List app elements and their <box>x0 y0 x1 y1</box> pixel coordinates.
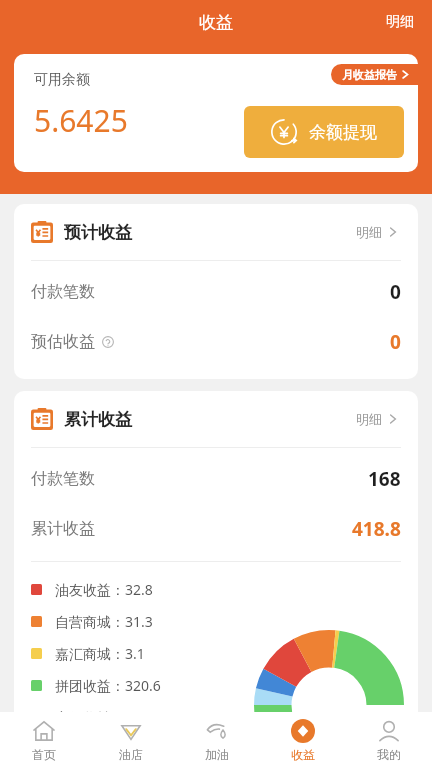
button[interactable]: 收益 <box>260 712 346 768</box>
staticText: 首页 <box>32 747 56 762</box>
button[interactable]: 月收益报告 <box>331 64 418 85</box>
button[interactable]: 我的 <box>346 712 432 768</box>
staticText: 累计收益 <box>64 409 132 430</box>
staticText: 预计收益 <box>64 222 132 243</box>
staticText: 明细 <box>356 411 382 427</box>
button[interactable]: 油店 <box>87 712 174 768</box>
staticText: 付款笔数 <box>31 282 95 302</box>
button[interactable]: 明细 <box>352 220 401 244</box>
staticText: 我的 <box>377 747 401 762</box>
staticText: 充值收益：15.5 <box>55 708 153 727</box>
staticText: 明细 <box>386 13 414 31</box>
button[interactable]: 明细 <box>368 1 432 43</box>
staticText: 余额提现 <box>309 122 377 143</box>
staticText: 嘉汇商城：3.1 <box>55 644 145 663</box>
button[interactable]: 余额提现 <box>244 106 404 158</box>
staticText: 收益 <box>199 12 233 33</box>
staticText: 收益 <box>291 747 315 762</box>
staticText: 自营商城：31.3 <box>55 612 153 631</box>
button[interactable]: 首页 <box>0 712 87 768</box>
staticText: 可用余额 <box>34 71 90 89</box>
button[interactable]: 加油 <box>174 712 260 768</box>
staticText: 5.6425 <box>34 100 128 141</box>
staticText: 0 <box>390 279 401 305</box>
staticText: 明细 <box>356 224 382 240</box>
staticText: 累计收益 <box>31 519 95 539</box>
staticText: 0 <box>390 329 401 355</box>
staticText: 付款笔数 <box>31 469 95 489</box>
staticText: 油友收益：32.8 <box>55 580 153 599</box>
staticText: 168 <box>368 466 401 492</box>
staticText: 预估收益 <box>31 332 95 352</box>
button[interactable]: 明细 <box>352 407 401 431</box>
staticText: 拼团收益：320.6 <box>55 676 161 695</box>
staticText: 月收益报告 <box>342 68 397 82</box>
staticText: 418.8 <box>352 516 401 542</box>
staticText: 油店 <box>119 747 143 762</box>
staticText: 加油 <box>205 747 229 762</box>
